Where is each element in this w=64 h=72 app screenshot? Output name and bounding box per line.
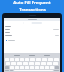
button[interactable] — [4, 31, 60, 34]
button[interactable] — [4, 28, 60, 31]
button[interactable]: Auto Fill Frequent — [0, 0, 64, 13]
button[interactable] — [4, 34, 60, 37]
staticText: Auto Fill Frequent — [13, 0, 51, 6]
button[interactable] — [4, 25, 60, 28]
button[interactable] — [23, 22, 42, 24]
staticText: Transactions — [19, 7, 46, 13]
